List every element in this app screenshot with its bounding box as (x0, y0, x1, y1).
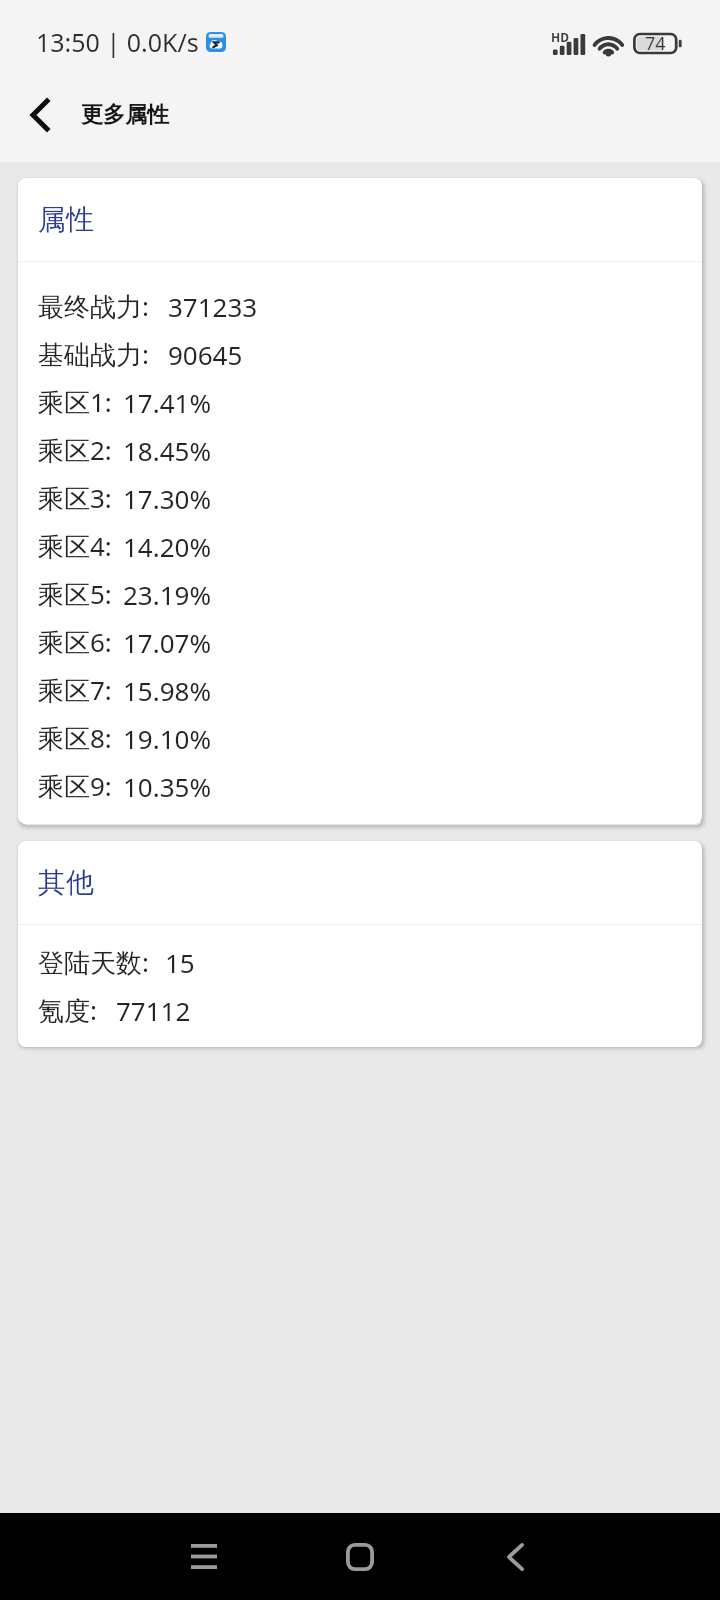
staticText: 77112 (116, 993, 191, 1028)
staticText: 17.41% (123, 385, 212, 420)
staticText: 最终战力: (38, 288, 149, 324)
staticText: 乘区2: (38, 432, 112, 468)
staticText: 属性 (38, 202, 94, 237)
button[interactable]: 最终战力: (18, 282, 702, 330)
staticText: 乘区5: (38, 576, 112, 612)
button[interactable]: Home (315, 1514, 404, 1599)
staticText: 乘区6: (38, 624, 112, 660)
staticText: 登陆天数: (38, 944, 149, 980)
staticText: 19.10% (123, 721, 212, 756)
staticText: 74 (645, 31, 666, 56)
staticText: 23.19% (123, 577, 212, 612)
button[interactable]: 乘区7: (18, 666, 702, 714)
button[interactable]: 乘区6: (18, 618, 702, 666)
staticText: 15.98% (123, 673, 212, 708)
staticText: 17.30% (123, 481, 212, 516)
staticText: 14.20% (123, 529, 212, 564)
button[interactable]: Back (0, 75, 80, 155)
staticText: 13:50 | 0.0K/s (36, 25, 199, 59)
staticText: HD (551, 29, 569, 45)
staticText: 15 (165, 945, 195, 980)
button[interactable]: 氪度: (18, 986, 702, 1034)
button[interactable]: Back (471, 1514, 560, 1599)
staticText: 乘区9: (38, 768, 112, 804)
button[interactable]: 乘区1: (18, 378, 702, 426)
button[interactable]: 乘区2: (18, 426, 702, 474)
staticText: 乘区1: (38, 384, 112, 420)
staticText: 10.35% (123, 769, 212, 804)
staticText: 18.45% (123, 433, 212, 468)
staticText: 基础战力: (38, 336, 149, 372)
button[interactable]: 登陆天数: (18, 938, 702, 986)
button[interactable]: 乘区5: (18, 570, 702, 618)
staticText: 乘区7: (38, 672, 112, 708)
button[interactable]: Recent apps (159, 1514, 248, 1599)
button[interactable]: 乘区4: (18, 522, 702, 570)
staticText: 更多属性 (81, 101, 169, 129)
staticText: 371233 (168, 289, 258, 324)
staticText: 其他 (38, 865, 94, 900)
staticText: 17.07% (123, 625, 212, 660)
button[interactable]: 乘区3: (18, 474, 702, 522)
button[interactable]: 基础战力: (18, 330, 702, 378)
staticText: 乘区3: (38, 480, 112, 516)
staticText: 乘区4: (38, 528, 112, 564)
staticText: 氪度: (38, 992, 97, 1028)
button[interactable]: 乘区9: (18, 762, 702, 810)
button[interactable]: 乘区8: (18, 714, 702, 762)
staticText: 90645 (168, 337, 243, 372)
staticText: 乘区8: (38, 720, 112, 756)
